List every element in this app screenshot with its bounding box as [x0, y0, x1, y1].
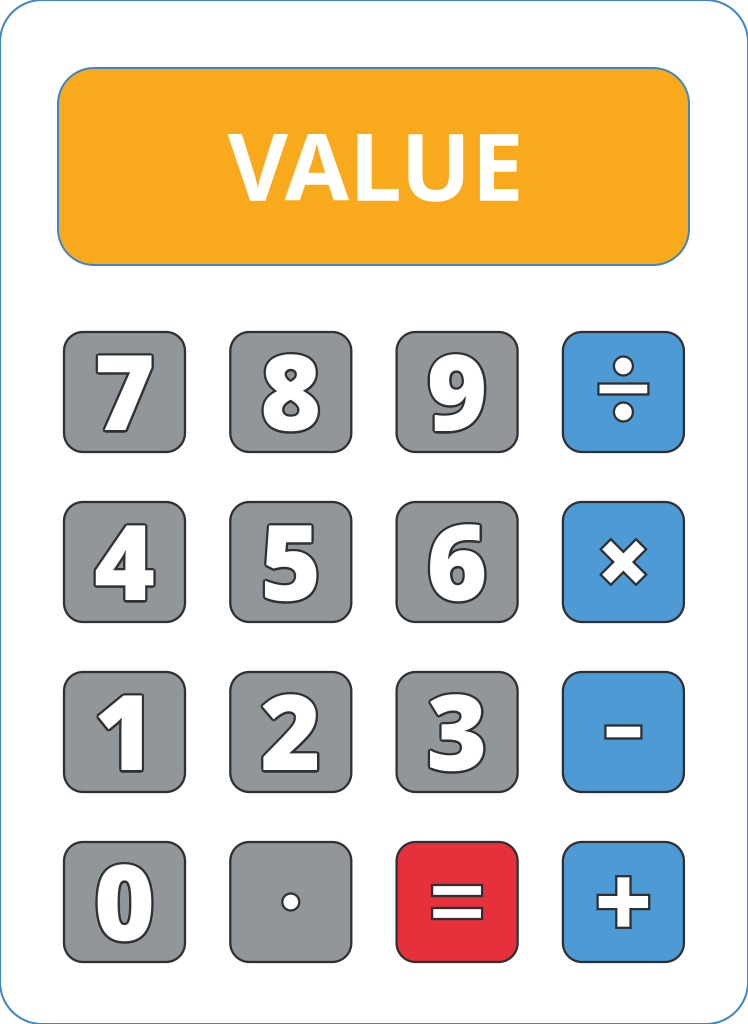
- staticText: 2: [262, 659, 323, 797]
- staticText: 9: [428, 323, 489, 461]
- staticText: 7: [96, 323, 157, 461]
- staticText: 0: [92, 829, 153, 967]
- staticText: 9: [425, 323, 486, 461]
- staticText: 4: [94, 491, 155, 629]
- button[interactable]: Plus: [563, 842, 684, 962]
- staticText: 8: [260, 319, 321, 457]
- staticText: 8: [260, 323, 321, 461]
- staticText: 8: [263, 321, 324, 459]
- staticText: 1: [92, 661, 153, 799]
- staticText: 2: [260, 663, 321, 801]
- staticText: 6: [428, 493, 489, 631]
- staticText: 9: [429, 321, 490, 459]
- staticText: 0: [92, 831, 153, 969]
- button[interactable]: 9: [397, 332, 518, 452]
- button[interactable]: Multiply: [563, 502, 684, 622]
- staticText: 7: [94, 323, 155, 461]
- staticText: 7: [92, 323, 153, 461]
- staticText: 9: [424, 321, 485, 459]
- staticText: 3: [425, 659, 486, 797]
- button[interactable]: Decimal point: [230, 842, 351, 962]
- staticText: 6: [427, 489, 488, 627]
- staticText: 8: [258, 321, 319, 459]
- staticText: 4: [92, 493, 153, 631]
- staticText: 5: [258, 491, 319, 629]
- button[interactable]: 2: [230, 672, 351, 792]
- staticText: 9: [427, 319, 488, 457]
- staticText: 9: [428, 319, 489, 457]
- staticText: 5: [260, 493, 321, 631]
- staticText: 9: [425, 319, 486, 457]
- staticText: 6: [427, 493, 488, 631]
- staticText: 1: [96, 659, 157, 797]
- staticText: 1: [94, 663, 155, 801]
- staticText: 4: [94, 489, 155, 627]
- staticText: 3: [428, 659, 489, 797]
- staticText: 1: [94, 661, 155, 799]
- staticText: 7: [94, 319, 155, 457]
- staticText: 9: [427, 323, 488, 461]
- staticText: 4: [96, 489, 157, 627]
- staticText: 1: [96, 661, 157, 799]
- button[interactable]: Divide: [563, 332, 684, 452]
- staticText: 0: [94, 831, 155, 969]
- staticText: 6: [428, 489, 489, 627]
- button[interactable]: 5: [230, 502, 351, 622]
- staticText: 2: [260, 659, 321, 797]
- staticText: 4: [96, 491, 157, 629]
- button[interactable]: 7: [64, 332, 185, 452]
- staticText: 5: [262, 493, 323, 631]
- staticText: 8: [262, 323, 323, 461]
- staticText: 0: [96, 829, 157, 967]
- staticText: 0: [94, 833, 155, 971]
- button[interactable]: Minus: [563, 672, 684, 792]
- staticText: 1: [94, 659, 155, 797]
- staticText: 5: [262, 489, 323, 627]
- staticText: 0: [92, 833, 153, 971]
- staticText: 5: [259, 493, 320, 631]
- staticText: 1: [92, 659, 153, 797]
- staticText: VALUE: [227, 102, 523, 226]
- staticText: 6: [429, 491, 490, 629]
- button[interactable]: 3: [397, 672, 518, 792]
- staticText: 4: [92, 489, 153, 627]
- staticText: 5: [260, 489, 321, 627]
- button[interactable]: 6: [397, 502, 518, 622]
- staticText: 1: [92, 663, 153, 801]
- staticText: 8: [259, 323, 320, 461]
- staticText: 8: [262, 319, 323, 457]
- staticText: 6: [425, 489, 486, 627]
- staticText: 0: [96, 831, 157, 969]
- staticText: 2: [259, 663, 320, 801]
- staticText: 4: [94, 493, 155, 631]
- staticText: 3: [427, 663, 488, 801]
- staticText: 2: [258, 661, 319, 799]
- staticText: 3: [429, 661, 490, 799]
- staticText: 7: [94, 321, 155, 459]
- button[interactable]: 1: [64, 672, 185, 792]
- staticText: 6: [425, 493, 486, 631]
- staticText: 7: [92, 321, 153, 459]
- staticText: 1: [96, 663, 157, 801]
- staticText: 3: [428, 663, 489, 801]
- staticText: 4: [92, 491, 153, 629]
- staticText: 3: [425, 663, 486, 801]
- staticText: 2: [262, 663, 323, 801]
- staticText: 0: [96, 833, 157, 971]
- staticText: 9: [427, 321, 488, 459]
- staticText: 2: [263, 661, 324, 799]
- staticText: 0: [94, 829, 155, 967]
- button[interactable]: 8: [230, 332, 351, 452]
- staticText: 3: [427, 661, 488, 799]
- staticText: 5: [260, 491, 321, 629]
- staticText: 5: [263, 491, 324, 629]
- staticText: 2: [259, 659, 320, 797]
- staticText: 8: [260, 321, 321, 459]
- button[interactable]: Equals: [397, 842, 518, 962]
- staticText: 8: [259, 319, 320, 457]
- button[interactable]: 0: [64, 842, 185, 962]
- staticText: 7: [96, 319, 157, 457]
- staticText: 5: [259, 489, 320, 627]
- staticText: 6: [424, 491, 485, 629]
- button[interactable]: 4: [64, 502, 185, 622]
